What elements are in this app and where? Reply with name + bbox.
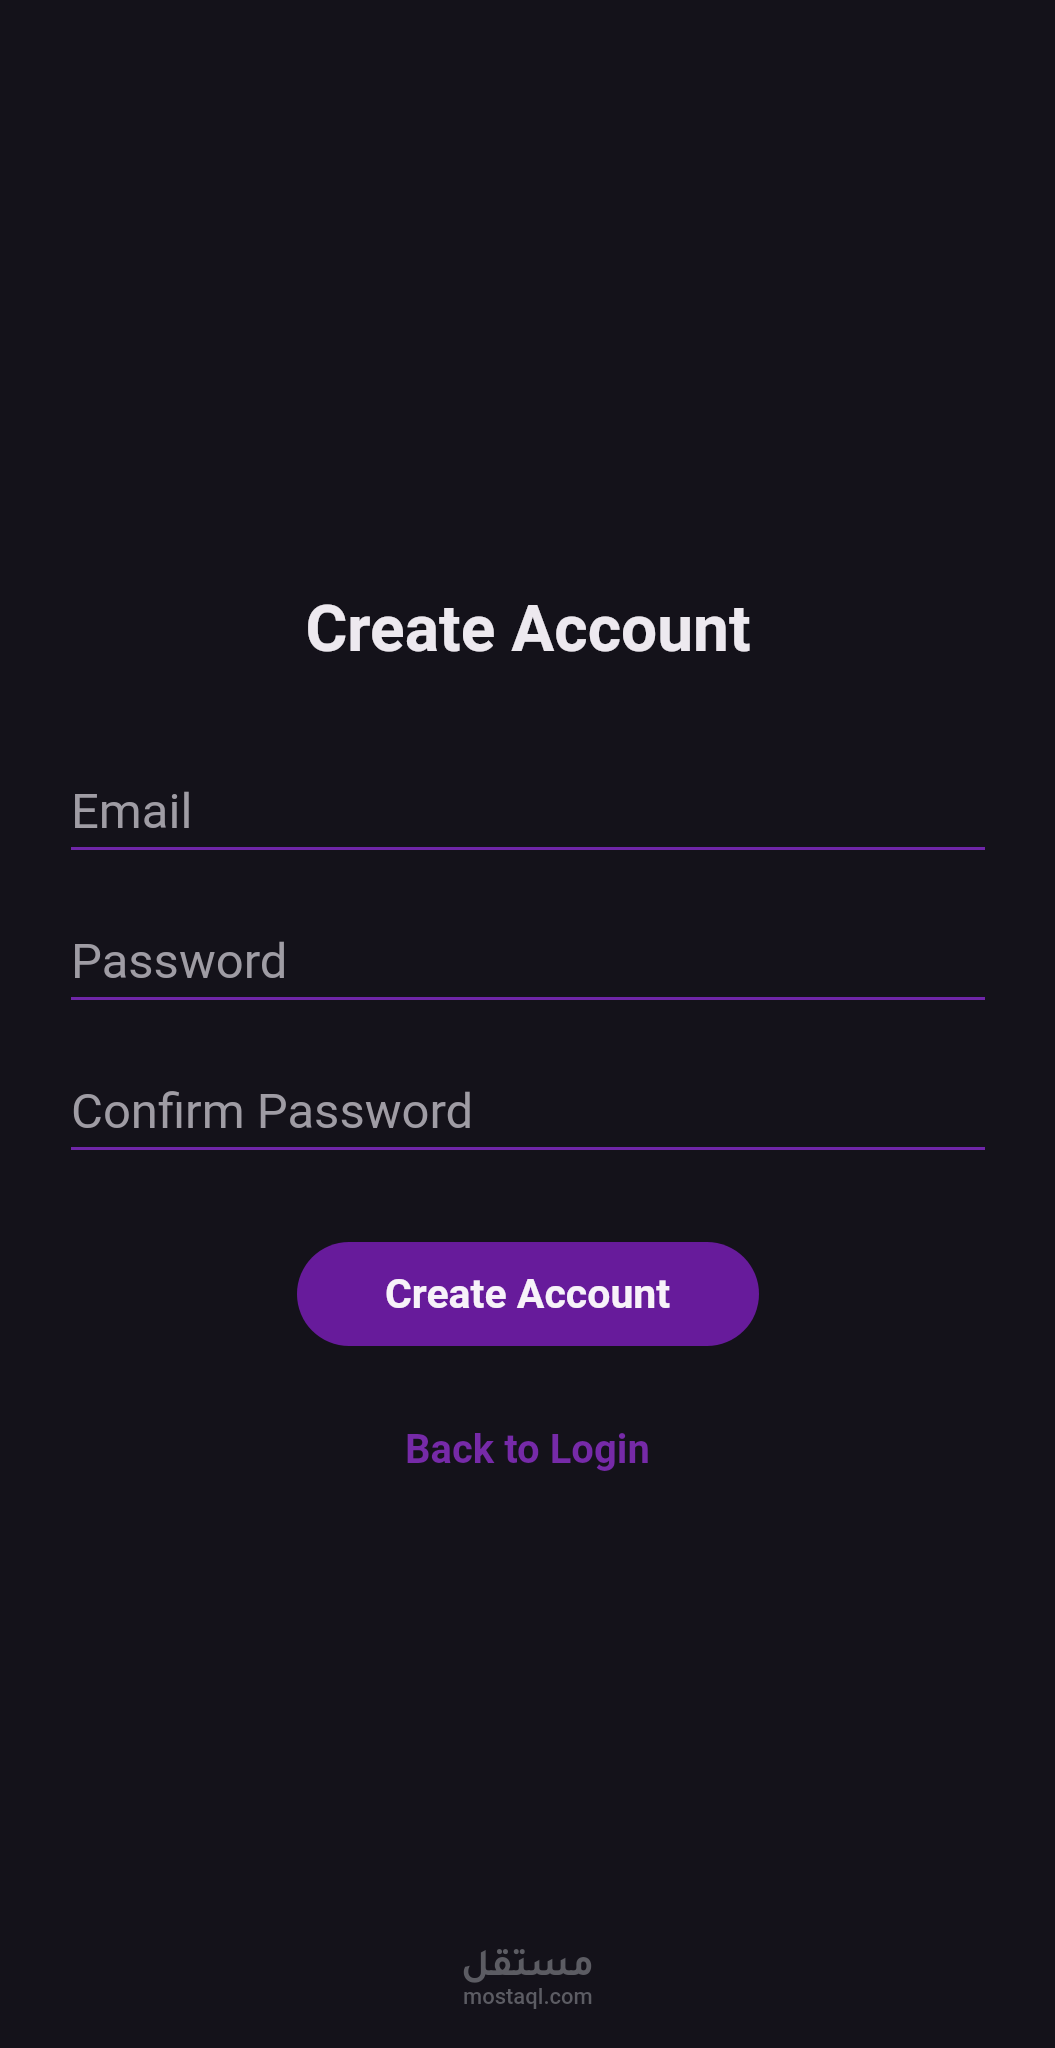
staticText: Create Account [385, 1270, 671, 1318]
button[interactable]: Email [71, 761, 985, 850]
staticText: Email [71, 783, 193, 840]
staticText: Confirm Password [71, 1083, 474, 1140]
button[interactable]: Password [71, 911, 985, 1000]
button[interactable]: Back to Login [405, 1426, 650, 1473]
staticText: Create Account [305, 592, 751, 667]
button[interactable]: Confirm Password [71, 1061, 985, 1150]
staticText: Password [71, 933, 288, 990]
other: mostaql logo [0, 1950, 1055, 1989]
button[interactable]: Create Account [297, 1242, 759, 1346]
staticText: Back to Login [405, 1426, 650, 1473]
staticText: mostaql.com [463, 1984, 593, 2010]
staticText: مستقل [461, 1950, 595, 1989]
